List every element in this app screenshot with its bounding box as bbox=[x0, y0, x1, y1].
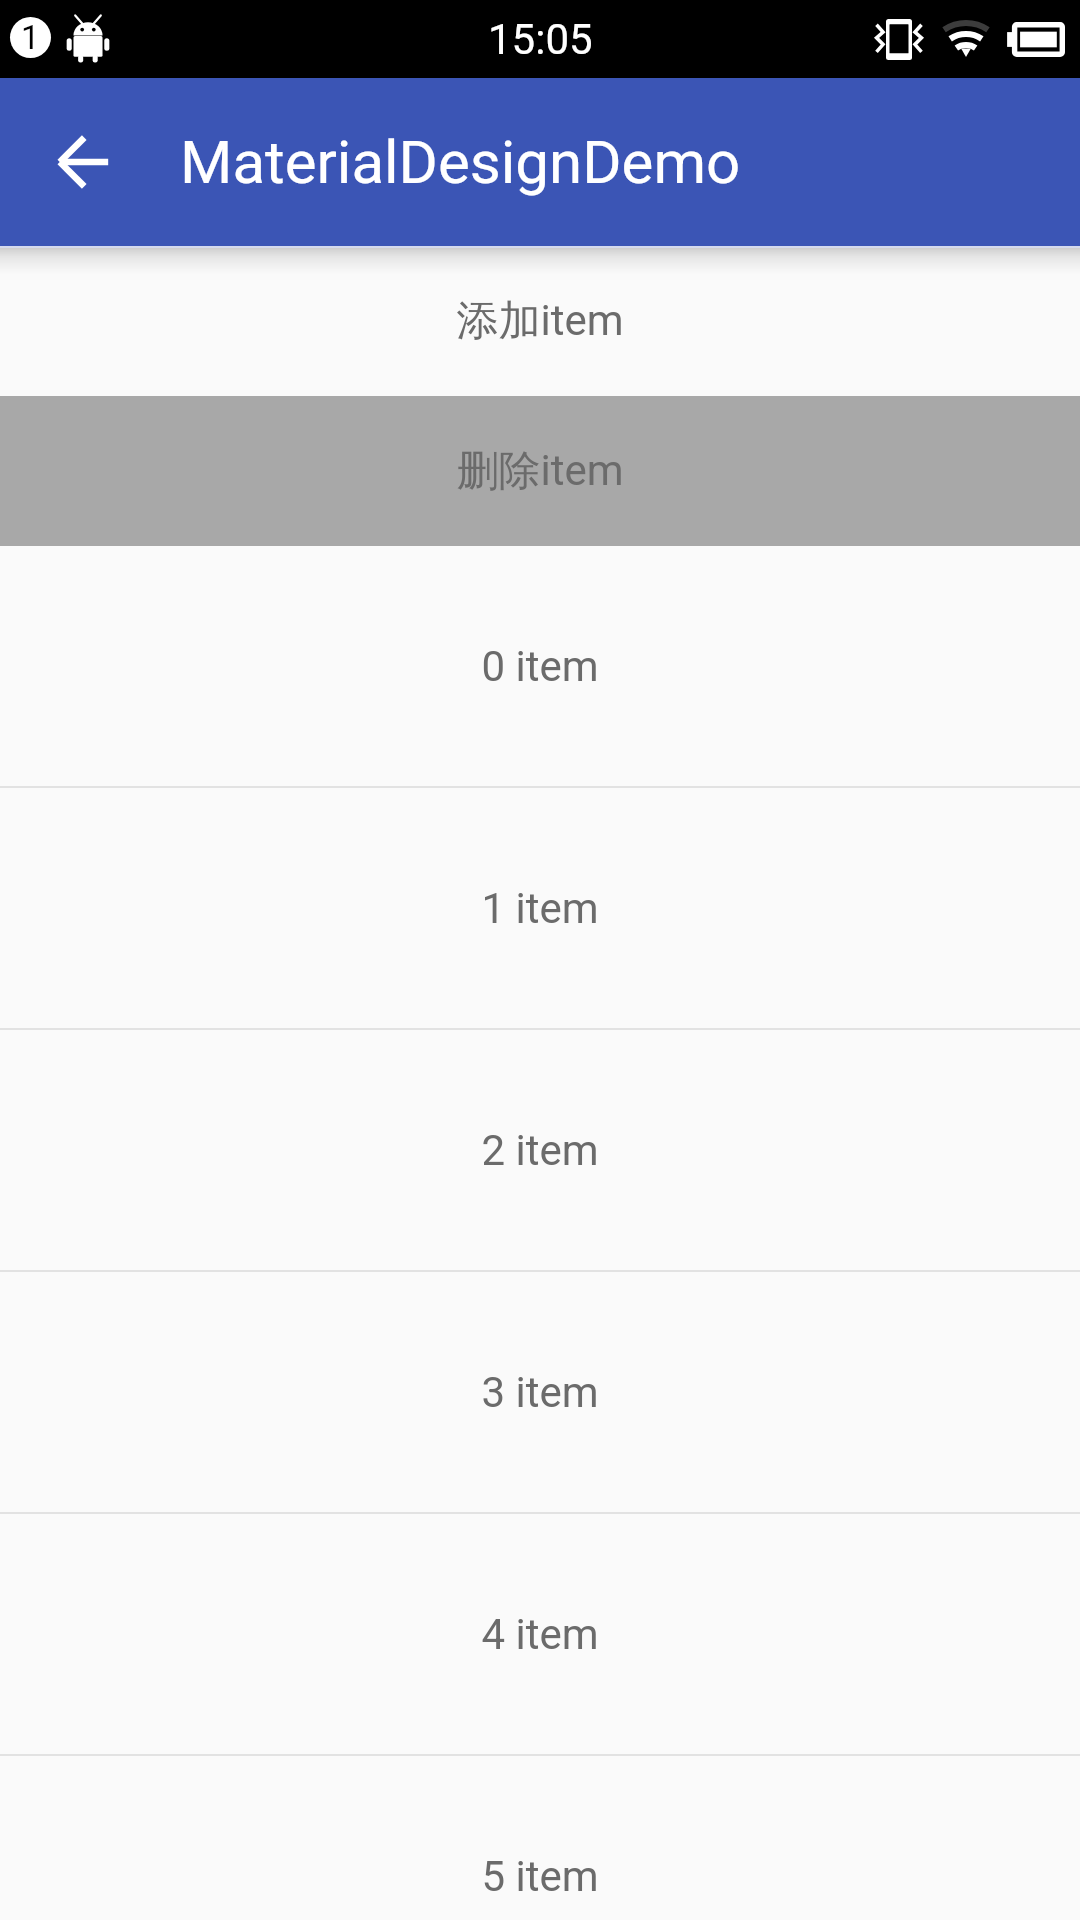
button[interactable]: Back bbox=[36, 114, 132, 210]
button[interactable]: 3 item bbox=[0, 1272, 1080, 1512]
staticText: 4 item bbox=[481, 1610, 599, 1659]
button[interactable]: 2 item bbox=[0, 1030, 1080, 1270]
staticText: 1 bbox=[21, 18, 40, 57]
button[interactable]: 4 item bbox=[0, 1514, 1080, 1754]
staticText: 15:05 bbox=[488, 15, 593, 64]
button[interactable]: 添加item bbox=[0, 246, 1080, 396]
button[interactable]: 1 item bbox=[0, 788, 1080, 1028]
button[interactable]: 删除item bbox=[0, 396, 1080, 546]
staticText: 0 item bbox=[481, 642, 599, 691]
button[interactable]: 5 item bbox=[0, 1756, 1080, 1920]
staticText: 3 item bbox=[481, 1368, 599, 1417]
staticText: MaterialDesignDemo bbox=[180, 127, 741, 197]
staticText: 添加item bbox=[456, 295, 624, 348]
staticText: 删除item bbox=[456, 445, 624, 498]
staticText: 2 item bbox=[481, 1126, 599, 1175]
button[interactable]: 0 item bbox=[0, 546, 1080, 786]
staticText: 1 item bbox=[481, 884, 599, 933]
staticText: 5 item bbox=[481, 1852, 599, 1901]
